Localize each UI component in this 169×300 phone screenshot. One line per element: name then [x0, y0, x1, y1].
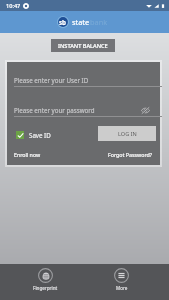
staticText: Fingerprint [33, 285, 58, 291]
button[interactable]: Enroll now [14, 150, 41, 159]
staticText: LOG IN [118, 130, 137, 138]
button[interactable]: Fingerprint [25, 265, 66, 294]
staticText: sb [59, 18, 67, 26]
staticText: INSTANT BALANCE [58, 42, 108, 50]
staticText: Please enter your password [14, 106, 95, 114]
staticText: state [72, 17, 90, 27]
staticText: 10:47 [6, 2, 21, 10]
staticText: Please enter your User ID [14, 76, 89, 84]
button[interactable]: Save ID [16, 129, 51, 140]
staticText: Save ID [29, 131, 51, 139]
staticText: Forgot Password? [108, 151, 153, 158]
button[interactable]: Please enter your password [14, 104, 162, 116]
staticText: bank [90, 17, 108, 27]
button[interactable]: INSTANT BALANCE [51, 39, 115, 52]
button[interactable]: LOG IN [98, 126, 156, 141]
button[interactable]: Please enter your User ID [14, 74, 162, 86]
button[interactable]: More [101, 265, 142, 294]
other: Show password [141, 107, 150, 114]
staticText: Enroll now [14, 151, 41, 158]
staticText: More [116, 285, 128, 291]
button[interactable]: Forgot Password? [106, 150, 153, 159]
